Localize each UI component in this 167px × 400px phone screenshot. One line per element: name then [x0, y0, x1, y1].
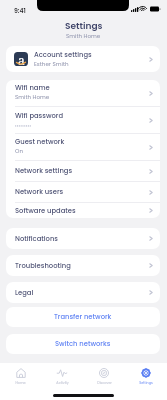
button[interactable]: Network settings [6, 161, 160, 181]
staticText: a [18, 52, 25, 66]
staticText: Guest network [15, 137, 65, 147]
button[interactable]: Activity [41, 366, 83, 385]
button[interactable]: Transfer network [6, 307, 160, 327]
staticText: 9:41 [14, 6, 26, 15]
button[interactable]: Settings [125, 366, 167, 385]
staticText: Smith Home [15, 93, 50, 101]
staticText: Account settings [34, 50, 92, 60]
staticText: Network users [15, 187, 64, 197]
staticText: Settings [65, 20, 103, 33]
staticText: Legal [15, 288, 34, 298]
staticText: Network settings [15, 166, 73, 176]
button[interactable]: Wifi name [6, 80, 160, 106]
staticText: Troubleshooting [15, 261, 71, 271]
button[interactable]: a [6, 46, 160, 72]
button[interactable]: Notifications [6, 228, 160, 249]
staticText: Settings [139, 380, 153, 385]
staticText: Switch networks [55, 339, 111, 349]
staticText: Activity [56, 380, 69, 385]
button[interactable]: Legal [6, 282, 160, 303]
staticText: Smith Home [66, 32, 101, 40]
staticText: Home [15, 380, 26, 385]
staticText: Transfer network [54, 312, 112, 322]
button[interactable]: Software updates [6, 203, 160, 218]
button[interactable]: Guest network [6, 134, 160, 160]
staticText: Notifications [15, 234, 58, 244]
button[interactable]: Wifi password [6, 107, 160, 133]
staticText: Esther Smith [34, 60, 69, 68]
button[interactable]: Discover [83, 366, 125, 385]
staticText: Wifi password [15, 111, 64, 121]
button[interactable]: Home [0, 366, 41, 385]
staticText: On [15, 147, 23, 155]
staticText: Software updates [15, 206, 76, 216]
button[interactable]: Switch networks [6, 334, 160, 354]
staticText: Discover [97, 380, 112, 385]
button[interactable]: Troubleshooting [6, 255, 160, 276]
button[interactable]: Network users [6, 182, 160, 202]
staticText: Wifi name [15, 83, 50, 93]
